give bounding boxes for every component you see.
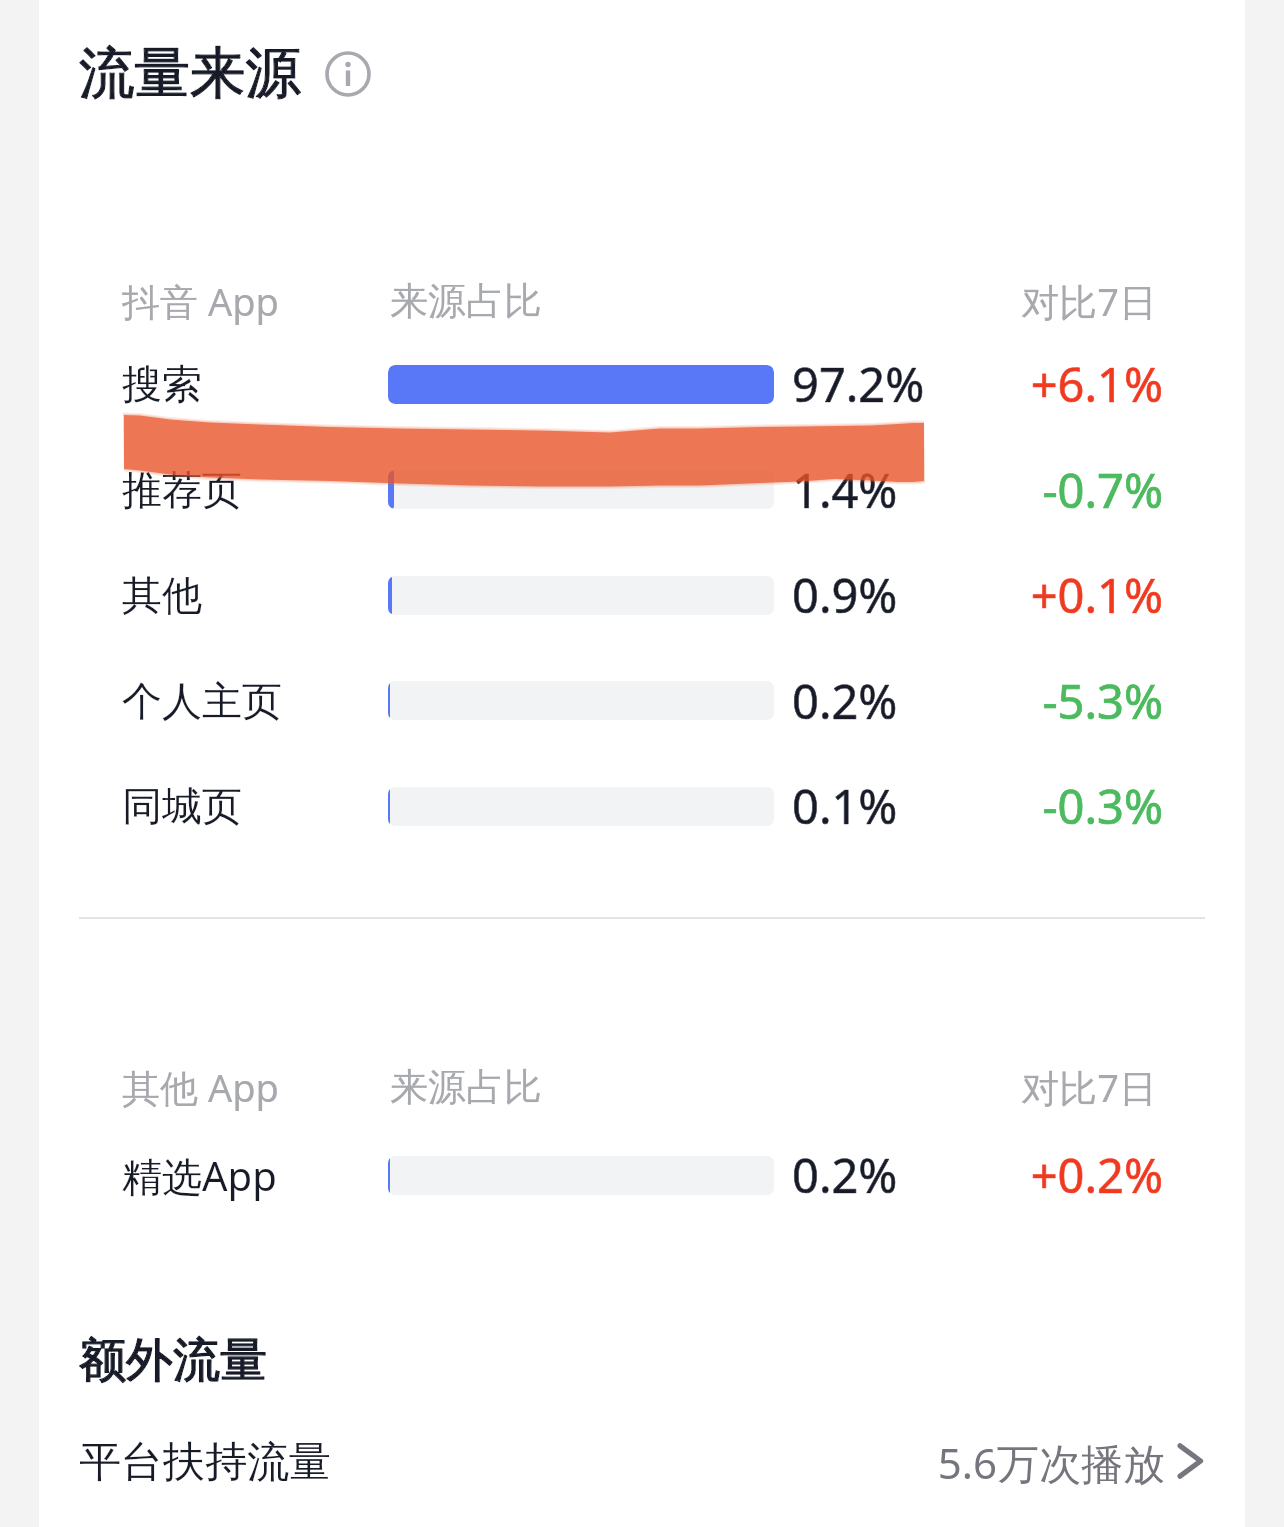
staticText: -0.3% [1042, 774, 1163, 837]
staticText: +0.1% [1030, 563, 1163, 626]
staticText: +0.2% [1030, 1143, 1163, 1206]
button[interactable]: 流量来源说明 [325, 51, 371, 97]
staticText: 对比7日 [1021, 1061, 1157, 1112]
staticText: +6.1% [1030, 352, 1163, 415]
button[interactable]: 查看平台扶持流量 [1174, 1442, 1212, 1480]
button[interactable] [39, 754, 1245, 858]
button[interactable] [39, 543, 1245, 647]
button[interactable] [39, 438, 1245, 542]
staticText: 精选App [122, 1148, 277, 1202]
button[interactable] [39, 1412, 1245, 1512]
staticText: 平台扶持流量 [79, 1436, 331, 1489]
staticText: 0.1% [792, 774, 898, 837]
staticText: 1.4% [792, 458, 898, 521]
button[interactable]: 流量来源 [79, 36, 301, 111]
staticText: +0.2% [1030, 1143, 1163, 1206]
staticText: 5.6万次播放 [937, 1434, 1165, 1491]
staticText: 流量来源 [79, 39, 301, 109]
staticText: 额外流量 [79, 1331, 267, 1390]
staticText: 1.4% [792, 458, 898, 521]
staticText: -5.3% [1042, 669, 1163, 732]
staticText: 来源占比 [390, 1063, 542, 1111]
button[interactable] [39, 1123, 1245, 1227]
staticText: 0.2% [792, 1143, 898, 1206]
staticText: 搜索 [122, 359, 202, 409]
staticText: +0.1% [1030, 563, 1163, 626]
staticText: 来源占比 [390, 277, 542, 325]
staticText: 额外流量 [79, 1331, 267, 1390]
staticText: 个人主页 [122, 676, 282, 726]
staticText: 流量来源 [79, 39, 301, 109]
staticText: 其他 App [122, 1061, 279, 1112]
staticText: 0.9% [792, 563, 898, 626]
staticText: 同城页 [122, 781, 242, 831]
staticText: 其他 [122, 570, 202, 620]
staticText: 抖音 App [122, 275, 279, 326]
staticText: 0.2% [792, 669, 898, 732]
staticText: 0.2% [792, 1143, 898, 1206]
staticText: 对比7日 [1021, 275, 1157, 326]
staticText: 0.9% [792, 563, 898, 626]
staticText: 97.2% [792, 352, 925, 415]
button[interactable] [39, 649, 1245, 753]
staticText: -0.7% [1042, 458, 1163, 521]
staticText: -0.3% [1042, 774, 1163, 837]
staticText: 0.2% [792, 669, 898, 732]
staticText: 97.2% [792, 352, 925, 415]
staticText: -5.3% [1042, 669, 1163, 732]
staticText: 0.1% [792, 774, 898, 837]
staticText: -0.7% [1042, 458, 1163, 521]
button[interactable] [39, 332, 1245, 436]
staticText: +6.1% [1030, 352, 1163, 415]
staticText: 推荐页 [122, 465, 242, 515]
